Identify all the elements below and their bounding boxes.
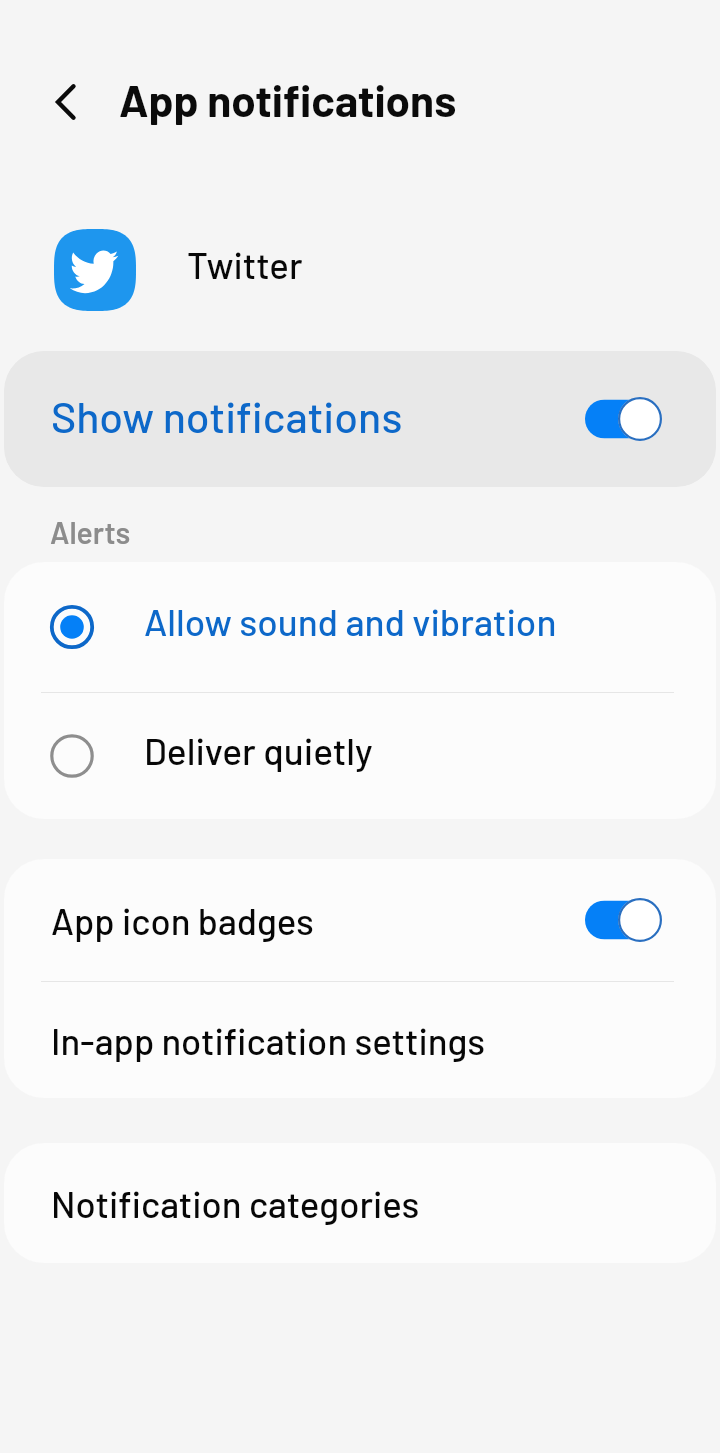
button[interactable]: Deliver quietly: [4, 693, 716, 819]
staticText: Allow sound and vibration: [144, 599, 557, 643]
staticText: Twitter: [187, 242, 303, 286]
button[interactable]: App icon badges: [4, 859, 716, 981]
staticText: App notifications: [119, 73, 457, 126]
staticText: Alerts: [50, 514, 131, 550]
staticText: Show notifications: [51, 390, 585, 442]
button[interactable]: Notification categories: [4, 1143, 716, 1263]
button[interactable]: Navigate up: [30, 74, 86, 130]
staticText: App icon badges: [51, 898, 585, 942]
button[interactable]: Allow sound and vibration: [4, 562, 716, 692]
staticText: In-app notification settings: [51, 1018, 485, 1062]
button[interactable]: Show notifications: [4, 351, 716, 487]
staticText: Deliver quietly: [144, 728, 373, 772]
staticText: Notification categories: [51, 1181, 420, 1225]
button[interactable]: In-app notification settings: [4, 982, 716, 1098]
